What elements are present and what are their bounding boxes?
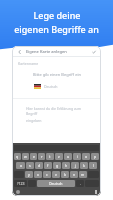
staticText: o (85, 154, 88, 159)
button[interactable]: h (62, 162, 70, 169)
staticText: f (47, 163, 49, 168)
button[interactable]: ?123 (14, 180, 27, 187)
staticText: n (73, 172, 76, 177)
staticText: s (29, 163, 31, 168)
staticText: i (77, 154, 78, 159)
staticText: Kartenname (18, 61, 39, 66)
button[interactable]: b (61, 171, 69, 178)
button[interactable]: Deutsch (34, 84, 101, 89)
button[interactable]: c (43, 171, 51, 178)
button[interactable]: l (89, 162, 97, 169)
button[interactable]: x (34, 171, 42, 178)
staticText: q (16, 154, 19, 159)
staticText: m (81, 172, 85, 177)
button[interactable]: Zurück (16, 48, 23, 55)
staticText: h (65, 163, 68, 168)
staticText: g (56, 163, 59, 168)
button[interactable]: k (80, 162, 88, 169)
staticText: p (94, 154, 97, 159)
button[interactable]: v (52, 171, 60, 178)
button[interactable]: j (71, 162, 79, 169)
staticText: . (80, 181, 81, 186)
staticText: Lege deine (33, 9, 81, 21)
button[interactable]: Zurück (16, 190, 20, 194)
staticText: w (24, 154, 27, 159)
button[interactable]: i (73, 153, 81, 160)
button[interactable]: a (16, 162, 25, 169)
staticText: z (58, 154, 60, 159)
button[interactable]: . (76, 180, 84, 187)
staticText: Bitte gib einen Begriff ein (33, 72, 81, 77)
staticText: Deutsch (44, 84, 58, 89)
button[interactable]: e (30, 153, 37, 160)
staticText: c (46, 172, 48, 177)
staticText: Eigene Karte anlegen (26, 49, 90, 54)
staticText: k (83, 163, 85, 168)
button[interactable]: t (46, 153, 54, 160)
button[interactable]: z (55, 153, 63, 160)
button[interactable]: u (64, 153, 72, 160)
staticText: j (75, 163, 76, 168)
staticText: x (37, 172, 39, 177)
button[interactable]: s (26, 162, 34, 169)
button[interactable]: m (79, 171, 87, 178)
button[interactable]: p (91, 153, 99, 160)
staticText: ?123 (17, 181, 25, 186)
staticText: u (67, 154, 70, 159)
button[interactable]: y (25, 171, 33, 178)
staticText: eigenen Begriffe an (14, 23, 99, 35)
button[interactable]: g (53, 162, 61, 169)
staticText: eingeben (26, 118, 42, 123)
button[interactable]: d (35, 162, 43, 169)
button[interactable]: q (14, 153, 21, 160)
staticText: l (93, 163, 94, 168)
button[interactable]: o (82, 153, 90, 160)
staticText: a (20, 163, 22, 168)
staticText: b (64, 172, 67, 177)
staticText: y (28, 172, 30, 177)
button[interactable]: n (70, 171, 78, 178)
staticText: Hier kannst du die Erklärung zum Begriff (26, 106, 91, 116)
staticText: Deutsch (49, 181, 63, 186)
button[interactable]: Speichern (90, 48, 97, 55)
button[interactable]: r (38, 153, 45, 160)
staticText: v (55, 172, 57, 177)
staticText: r (41, 154, 43, 159)
staticText: e (33, 154, 35, 159)
button[interactable]: w (22, 153, 29, 160)
button[interactable]: f (44, 162, 52, 169)
button[interactable]: Deutsch (37, 180, 75, 187)
staticText: t (49, 154, 51, 159)
staticText: d (38, 163, 41, 168)
